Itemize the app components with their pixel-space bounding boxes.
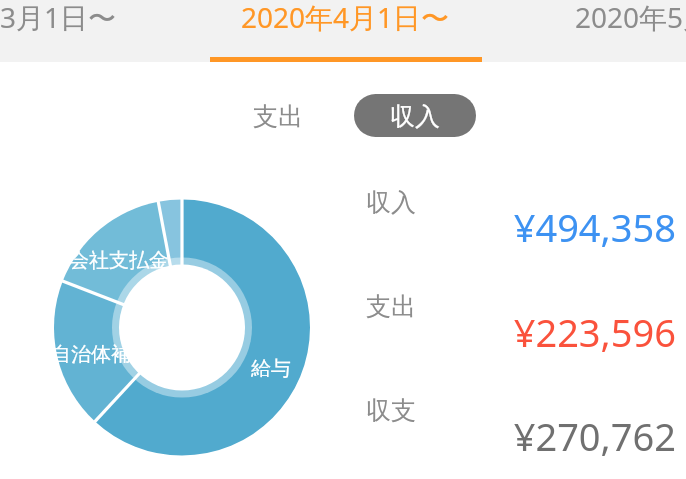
staticText: ¥494,358 (285, 201, 676, 253)
staticText: 支出 (366, 291, 416, 322)
staticText: 2020年4月1日〜 (241, 0, 450, 36)
staticText: 給与 (71, 356, 471, 381)
button[interactable]: 収入 (285, 173, 686, 263)
staticText: ¥270,762 (285, 410, 676, 462)
staticText: 2020年3月1日〜 (0, 0, 117, 36)
button[interactable]: 2020年5月1日〜 (512, 0, 686, 62)
button[interactable]: 支出 (217, 94, 339, 137)
staticText: 収入 (366, 187, 416, 218)
staticText: 収支 (366, 395, 416, 426)
button[interactable]: 収入の内訳円グラフ (54, 200, 310, 456)
button[interactable]: 収入 (354, 94, 476, 137)
staticText: 2020年5月1日〜 (575, 0, 686, 36)
button[interactable]: 2020年3月1日〜 (0, 0, 179, 62)
staticText: ¥223,596 (285, 306, 676, 358)
staticText: 収入 (390, 101, 440, 132)
staticText: 会社支払金 (0, 248, 319, 273)
button[interactable]: 収支 (285, 381, 686, 471)
button[interactable]: 2020年4月1日〜 (178, 0, 512, 62)
button[interactable]: 支出 (285, 277, 686, 367)
staticText: 自治体補助金 (0, 342, 311, 367)
staticText: 支出 (253, 101, 303, 132)
